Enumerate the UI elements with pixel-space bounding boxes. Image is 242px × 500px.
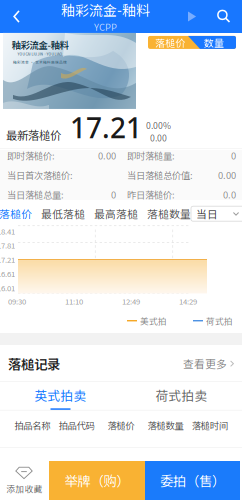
staticText: 即时落槌价: <box>7 149 55 162</box>
button[interactable]: Back <box>0 0 33 33</box>
staticText: 当日落槌总量: <box>7 188 64 201</box>
staticText: 0.00% <box>146 119 171 131</box>
staticText: 0 <box>111 188 116 201</box>
staticText: 16.01 <box>0 282 15 293</box>
staticText: 12:49 <box>122 295 140 307</box>
staticText: 0.0 <box>223 188 236 201</box>
staticText: 釉彩流金-釉料 <box>11 38 68 51</box>
staticText: 最低落槌 <box>41 206 85 221</box>
button[interactable]: Search <box>206 0 242 33</box>
button[interactable]: 最低落槌 <box>41 206 85 221</box>
button[interactable]: 落槌数量 <box>147 206 191 221</box>
staticText: 0.00 <box>150 131 167 144</box>
staticText: 添加收藏 <box>6 482 42 495</box>
staticText: 最高落槌 <box>94 206 138 221</box>
staticText: 拍品名称 <box>14 418 50 432</box>
staticText: 17.81 <box>0 240 15 251</box>
button[interactable]: 添加收藏 <box>0 461 49 500</box>
staticText: 16.61 <box>0 268 15 279</box>
staticText: 落槌价 <box>155 35 185 50</box>
staticText: 数量 <box>204 35 224 50</box>
staticText: 举牌（购） <box>64 471 129 490</box>
staticText: 昨日落槌价: <box>127 188 175 201</box>
staticText: 18.41 <box>0 225 15 237</box>
staticText: 釉彩流金 · 艺术釉料高端品牌 <box>13 59 67 65</box>
staticText: 英式拍卖 <box>34 386 86 404</box>
button[interactable]: 最高落槌 <box>94 206 138 221</box>
staticText: 14:29 <box>179 295 197 307</box>
staticText: 当日落槌总价值: <box>127 168 193 182</box>
staticText: 0 <box>231 149 236 162</box>
staticText: 最新落槌价 <box>6 127 61 143</box>
button[interactable]: 委拍（售） <box>145 461 240 500</box>
button[interactable]: 举牌（购） <box>49 461 145 500</box>
staticText: 查看更多 <box>183 356 227 371</box>
staticText: 11:10 <box>65 295 83 307</box>
staticText: 落槌数量 <box>147 418 183 432</box>
staticText: 落槌数量 <box>147 206 191 221</box>
staticText: 美式拍 <box>140 314 167 327</box>
staticText: YCPP <box>94 20 117 33</box>
button[interactable]: Play <box>178 0 206 33</box>
staticText: 荷式拍 <box>206 314 233 327</box>
staticText: 即时落槌量: <box>127 149 175 162</box>
staticText: 委拍（售） <box>160 471 225 490</box>
staticText: 落槌价 <box>0 206 32 221</box>
staticText: 17.21 <box>70 109 142 146</box>
button[interactable]: 落槌价 <box>0 206 32 221</box>
staticText: 落槌记录 <box>8 354 60 373</box>
staticText: 当日 <box>196 206 218 221</box>
staticText: 17.21 <box>0 254 15 265</box>
button[interactable]: 荷式拍卖 <box>121 382 242 410</box>
staticText: 0.00 <box>218 168 236 182</box>
staticText: 0.00 <box>98 149 116 162</box>
staticText: 釉彩流金-釉料 <box>61 0 150 20</box>
staticText: 09:30 <box>8 295 26 307</box>
button[interactable]: 落槌价 <box>148 36 192 49</box>
button[interactable]: 查看更多 <box>183 356 234 371</box>
staticText: 当日首次落槌价: <box>7 168 73 182</box>
staticText: YOU CAI LIU JIN - YOU LIAO <box>17 51 62 56</box>
staticText: 拍品代码 <box>59 418 95 432</box>
staticText: 落槌时间 <box>192 418 228 432</box>
button[interactable]: 英式拍卖 <box>0 382 121 410</box>
staticText: 荷式拍卖 <box>155 386 207 404</box>
staticText: 落槌价 <box>107 418 134 432</box>
button[interactable]: 当日 <box>191 206 242 221</box>
button[interactable]: 数量 <box>192 36 236 49</box>
